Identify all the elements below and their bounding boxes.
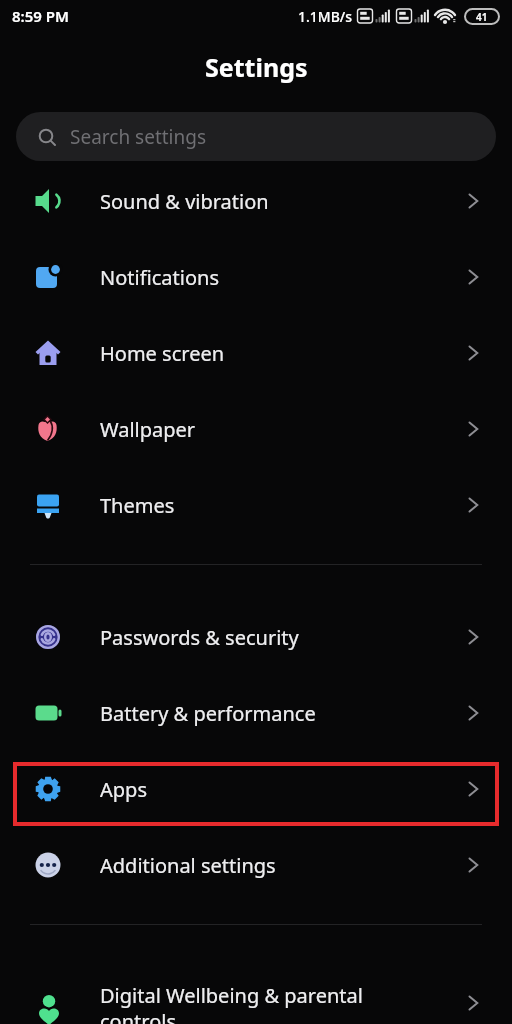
button[interactable]: Digital Wellbeing & parental controls: [0, 982, 512, 1024]
button[interactable]: Notifications: [0, 239, 512, 315]
button[interactable]: Sound & vibration: [0, 163, 512, 239]
staticText: Digital Wellbeing & parental controls: [100, 982, 363, 1024]
staticText: 8:59 PM: [12, 6, 69, 26]
button[interactable]: Passwords & security: [0, 599, 512, 675]
staticText: Home screen: [100, 340, 225, 367]
button[interactable]: Home screen: [0, 315, 512, 391]
staticText: 41: [476, 10, 488, 24]
button[interactable]: Battery & performance: [0, 675, 512, 751]
staticText: Battery & performance: [100, 700, 316, 727]
staticText: Themes: [100, 492, 175, 519]
staticText: Settings: [205, 50, 308, 84]
staticText: Notifications: [100, 264, 219, 291]
button[interactable]: Wallpaper: [0, 391, 512, 467]
staticText: Wallpaper: [100, 416, 196, 443]
staticText: 1.1MB/s: [298, 7, 353, 26]
button[interactable]: Apps: [0, 751, 512, 827]
staticText: Sound & vibration: [100, 188, 269, 215]
button[interactable]: Search settings: [16, 112, 496, 161]
staticText: Passwords & security: [100, 624, 299, 651]
staticText: Additional settings: [100, 852, 276, 879]
staticText: Apps: [100, 776, 147, 803]
button[interactable]: Additional settings: [0, 827, 512, 903]
button[interactable]: Themes: [0, 467, 512, 543]
staticText: Search settings: [70, 124, 207, 150]
